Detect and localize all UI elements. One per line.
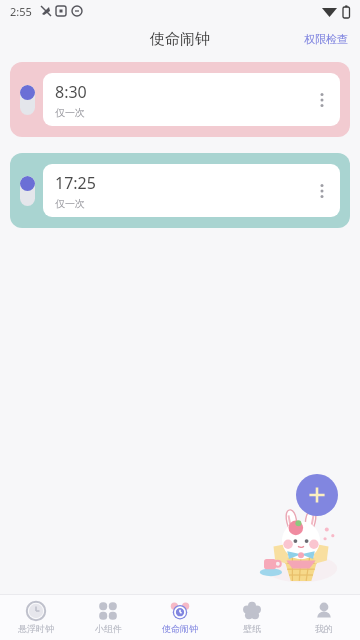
button[interactable]: More options xyxy=(310,179,334,203)
staticText: 2:55 xyxy=(10,4,32,19)
staticText: 8:30 xyxy=(55,81,87,103)
button[interactable]: Toggle alarm xyxy=(10,153,350,228)
staticText: 小组件 xyxy=(95,623,122,634)
staticText: 仅一次 xyxy=(55,197,85,210)
staticText: 权限检查 xyxy=(304,32,348,46)
staticText: 壁纸 xyxy=(243,623,261,634)
button[interactable]: Add alarm xyxy=(296,474,338,516)
button[interactable]: 使命闹钟 xyxy=(144,595,216,640)
button[interactable]: 权限检查 xyxy=(298,28,354,50)
staticText: 使命闹钟 xyxy=(162,623,198,634)
button[interactable]: 我的 xyxy=(288,595,360,640)
staticText: 仅一次 xyxy=(55,106,85,119)
button[interactable]: 壁纸 xyxy=(216,595,288,640)
button[interactable]: More options xyxy=(310,88,334,112)
button[interactable]: Toggle alarm xyxy=(10,62,350,137)
button[interactable]: 悬浮时钟 xyxy=(0,595,72,640)
staticText: 悬浮时钟 xyxy=(18,623,54,634)
staticText: 我的 xyxy=(315,623,333,634)
staticText: 17:25 xyxy=(55,172,96,194)
button[interactable]: Toggle alarm xyxy=(20,85,35,115)
button[interactable]: 小组件 xyxy=(72,595,144,640)
button[interactable]: Toggle alarm xyxy=(20,176,35,206)
staticText: 使命闹钟 xyxy=(150,30,210,49)
